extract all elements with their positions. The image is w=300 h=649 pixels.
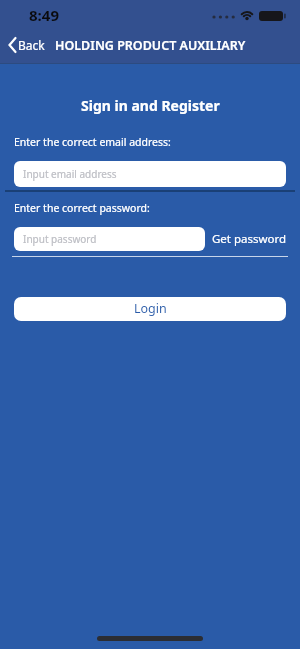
staticText: Back — [18, 37, 45, 53]
button[interactable]: Back — [4, 33, 56, 57]
staticText: Login — [134, 300, 167, 317]
staticText: HOLDING PRODUCT AUXILIARY — [55, 37, 246, 54]
button[interactable]: Get password — [212, 230, 287, 248]
staticText: 8:49 — [29, 5, 59, 24]
staticText: Input password — [23, 232, 97, 246]
staticText: Input email address — [23, 167, 117, 181]
button[interactable]: Input email address — [14, 161, 286, 187]
button[interactable]: Input password — [14, 227, 205, 251]
staticText: Sign in and Register — [81, 96, 220, 115]
button[interactable]: Login — [14, 297, 286, 321]
staticText: Enter the correct password: — [14, 201, 150, 215]
staticText: Enter the correct email address: — [14, 135, 171, 149]
staticText: Get password — [212, 231, 287, 247]
